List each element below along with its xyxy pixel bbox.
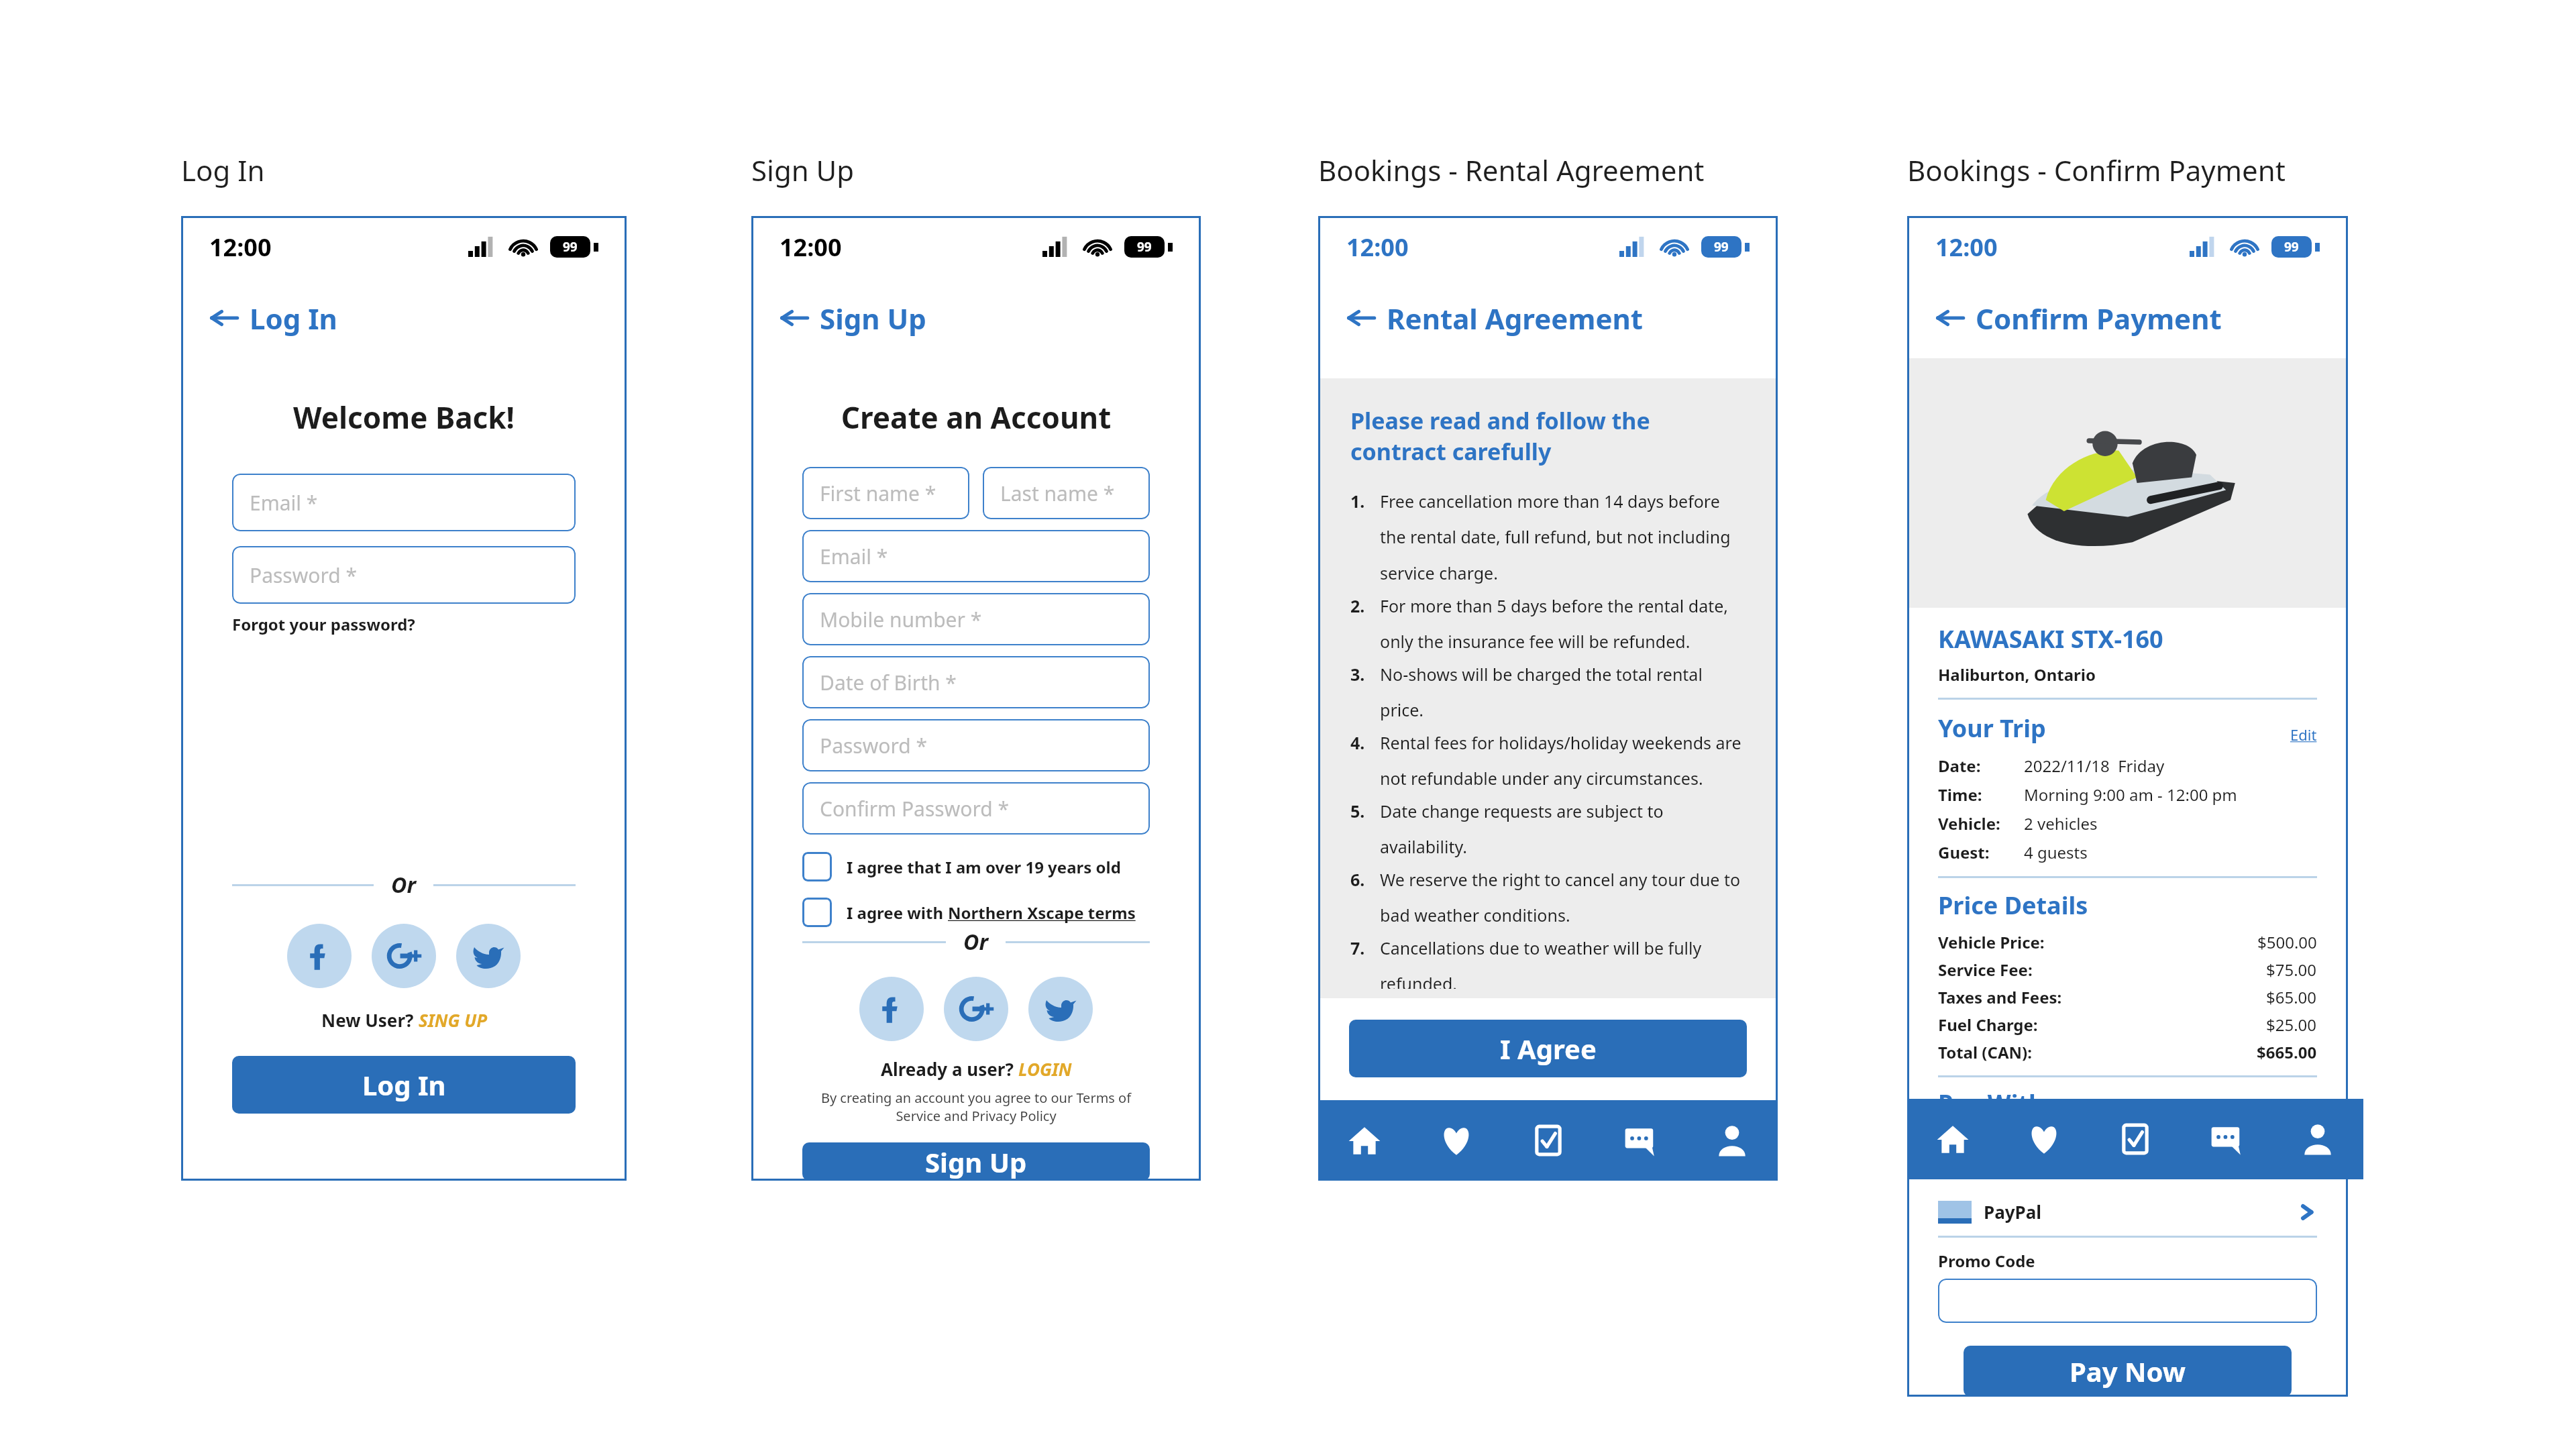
staticText: 12:00 (209, 231, 272, 264)
button[interactable]: Sign Up (802, 1142, 1150, 1181)
staticText: Your Trip (1938, 712, 2046, 745)
button[interactable]: Facebook (287, 924, 352, 988)
staticText: Price Details (1938, 889, 2088, 922)
staticText: 3. (1350, 663, 1380, 686)
button[interactable]: Twitter (1028, 977, 1093, 1041)
staticText: Morning 9:00 am - 12:00 pm (2024, 784, 2237, 806)
other: Back (780, 303, 809, 333)
staticText: Date: (1938, 755, 2024, 777)
staticText: Time: (1938, 784, 2024, 806)
staticText: Vehicle Price: (1938, 931, 2045, 953)
button[interactable]: Google Plus (372, 924, 436, 988)
button[interactable]: Twitter (456, 924, 521, 988)
button[interactable]: Home (1318, 1100, 1410, 1181)
staticText: Or (391, 870, 416, 900)
button[interactable]: Password * (802, 719, 1150, 771)
button[interactable]: Confirm Password * (802, 782, 1150, 835)
button[interactable]: I agree that I am over 19 years old (802, 852, 1150, 881)
staticText: 4 guests (2024, 841, 2088, 863)
button[interactable]: First name * (802, 467, 969, 519)
other: Back (1935, 303, 1965, 333)
staticText: Rental Agreement (1387, 299, 1643, 337)
staticText: $25.00 (2266, 1014, 2317, 1036)
staticText: 2. (1350, 594, 1380, 617)
button[interactable]: Home (1907, 1099, 1998, 1179)
button[interactable]: Back (751, 278, 1201, 358)
staticText: I agree with (847, 902, 948, 924)
staticText: Sign Up (925, 1144, 1027, 1180)
staticText: Sign Up (820, 299, 926, 337)
button[interactable]: Pay Now (1964, 1346, 2292, 1397)
staticText: $65.00 (2266, 986, 2317, 1008)
staticText: Password * (250, 561, 358, 589)
staticText: KAWASAKI STX-160 (1938, 623, 2163, 655)
staticText: 4. (1350, 731, 1380, 754)
staticText: 7. (1350, 936, 1380, 959)
staticText: By creating an account you agree to our … (802, 1089, 1150, 1125)
button[interactable]: New User? (232, 1008, 576, 1032)
staticText: Date of Birth * (820, 669, 957, 696)
button[interactable]: Favourites (1998, 1099, 2090, 1179)
button[interactable]: Back (1318, 278, 1778, 358)
staticText: 12:00 (1346, 231, 1409, 264)
button[interactable]: Mobile number * (802, 593, 1150, 645)
button[interactable]: Already a user? (802, 1057, 1150, 1081)
button[interactable] (1938, 1279, 2317, 1323)
staticText: 12:00 (780, 231, 842, 264)
button[interactable]: I agree with (802, 898, 1150, 927)
staticText: Email * (820, 543, 888, 570)
staticText: 99 (2284, 238, 2299, 256)
staticText: Service Fee: (1938, 959, 2033, 981)
staticText: 99 (563, 238, 578, 256)
button[interactable]: Forgot your password? (232, 613, 415, 635)
staticText: We reserve the right to cancel any tour … (1380, 868, 1746, 927)
button[interactable]: Bookings (1502, 1100, 1594, 1181)
staticText: Log In (250, 299, 337, 337)
staticText: Email * (250, 489, 318, 517)
staticText: 6. (1350, 868, 1380, 891)
staticText: Confirm Password * (820, 795, 1009, 822)
staticText: New User? (321, 1008, 419, 1032)
staticText: For more than 5 days before the rental d… (1380, 594, 1746, 653)
button[interactable]: PayPal (1938, 1200, 2317, 1224)
button[interactable]: Last name * (983, 467, 1150, 519)
button[interactable]: Google Plus (944, 977, 1008, 1041)
staticText: Log In (362, 1067, 446, 1103)
staticText: 2022/11/18 Friday (2024, 755, 2165, 777)
button[interactable]: Profile (1686, 1100, 1778, 1181)
staticText: Date change requests are subject to avai… (1380, 800, 1746, 859)
staticText: Please read and follow the contract care… (1350, 405, 1746, 467)
button[interactable]: Date of Birth * (802, 656, 1150, 708)
button[interactable]: Email * (802, 530, 1150, 582)
button[interactable]: Profile (2272, 1099, 2363, 1179)
staticText: Welcome Back! (181, 397, 627, 437)
staticText: Bookings - Rental Agreement (1318, 151, 1705, 189)
staticText: $75.00 (2266, 959, 2317, 981)
button[interactable]: Back (181, 278, 627, 358)
staticText: Guest: (1938, 841, 2024, 863)
button[interactable]: Log In (232, 1056, 576, 1114)
button[interactable]: Messages (2181, 1099, 2272, 1179)
button[interactable]: Email * (232, 474, 576, 531)
staticText: Last name * (1000, 480, 1115, 507)
staticText: Bookings - Confirm Payment (1907, 151, 2286, 189)
button[interactable]: Facebook (859, 977, 924, 1041)
staticText: SING UP (419, 1008, 487, 1032)
staticText: No-shows will be charged the total renta… (1380, 663, 1746, 722)
button[interactable]: Favourites (1410, 1100, 1502, 1181)
staticText: Or (963, 927, 988, 957)
button[interactable]: Messages (1594, 1100, 1686, 1181)
staticText: LOGIN (1018, 1057, 1072, 1081)
button[interactable]: Edit (2290, 724, 2317, 745)
staticText: Cancellations due to weather will be ful… (1380, 936, 1746, 989)
button[interactable]: I Agree (1349, 1020, 1747, 1077)
staticText: Haliburton, Ontario (1938, 663, 2096, 686)
staticText: Pay With (1938, 1087, 2045, 1120)
staticText: Taxes and Fees: (1938, 986, 2062, 1008)
staticText: Rental fees for holidays/holiday weekend… (1380, 731, 1746, 790)
button[interactable]: Bookings (2090, 1099, 2181, 1179)
button[interactable]: Back (1907, 278, 2348, 358)
other: Back (209, 303, 239, 333)
staticText: Sign Up (751, 151, 855, 189)
button[interactable]: Password * (232, 546, 576, 604)
